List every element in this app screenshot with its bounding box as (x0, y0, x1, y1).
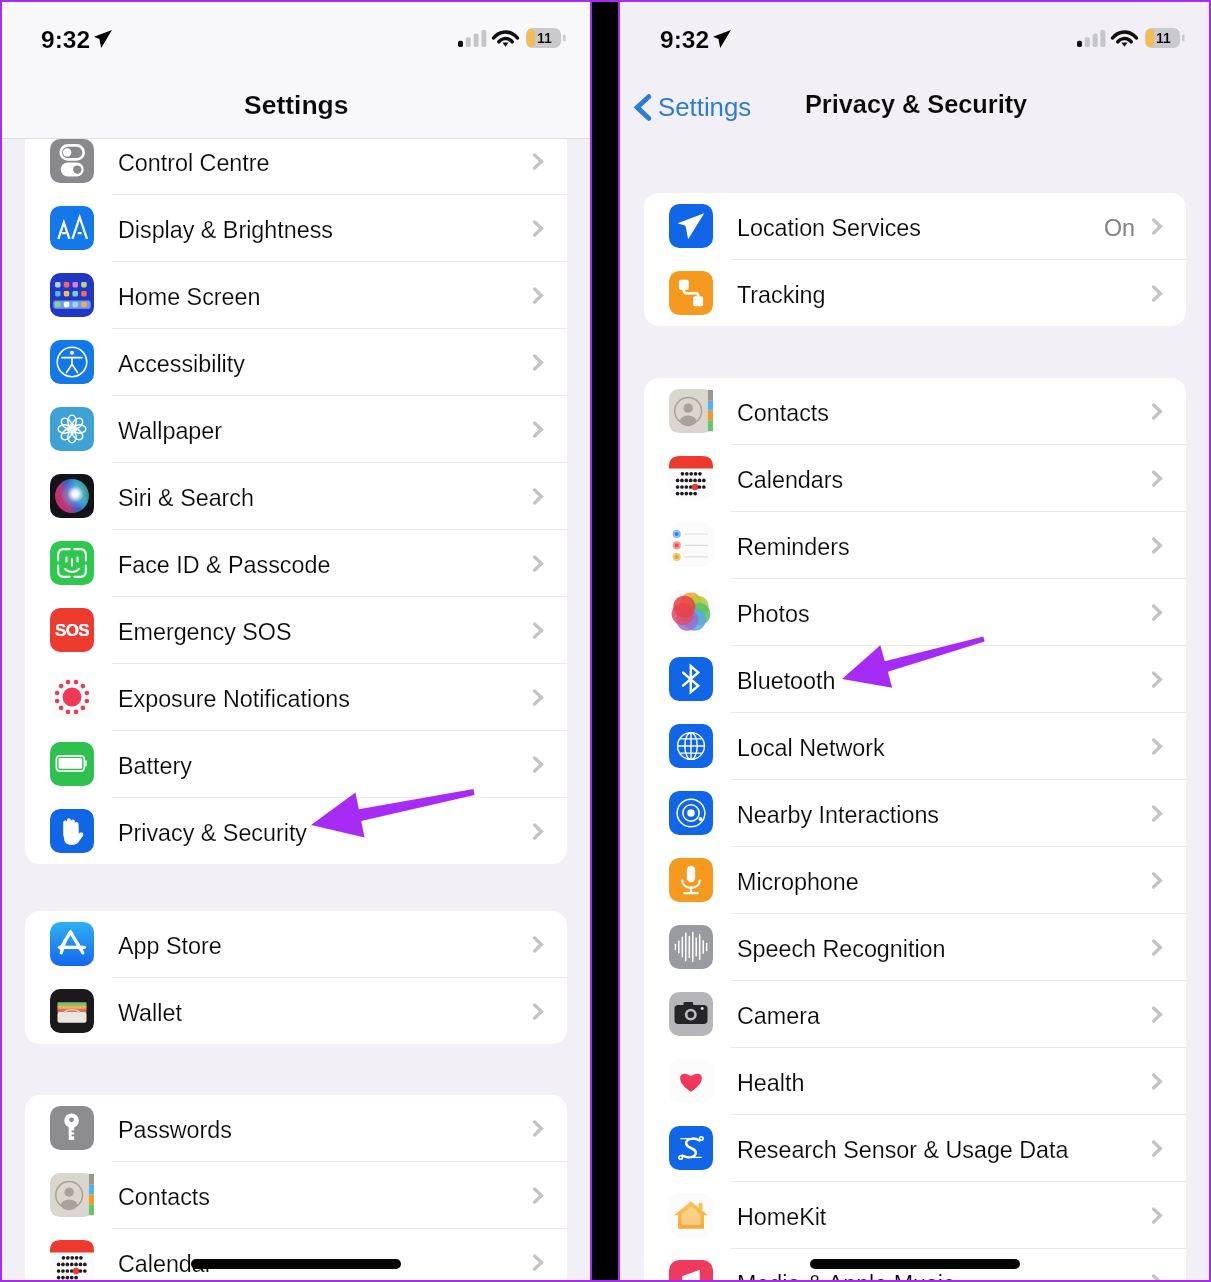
staticText: Calendar (118, 1251, 533, 1277)
button[interactable]: Face ID & Passcode (25, 530, 567, 597)
staticText: Contacts (737, 400, 1152, 426)
button[interactable]: Exposure Notifications (25, 664, 567, 731)
staticText: Emergency SOS (118, 619, 533, 645)
staticText: Photos (737, 601, 1152, 627)
button[interactable]: SOS (25, 597, 567, 664)
button[interactable]: Display & Brightness (25, 195, 567, 262)
button[interactable]: Location Services (644, 193, 1186, 260)
staticText: Settings (244, 90, 349, 120)
button[interactable]: Photos (644, 579, 1186, 646)
button[interactable]: Tracking (644, 260, 1186, 326)
staticText: Camera (737, 1003, 1152, 1029)
button[interactable]: Media & Apple Music (644, 1249, 1186, 1282)
button[interactable]: App Store (25, 911, 567, 978)
button[interactable]: Nearby Interactions (644, 780, 1186, 847)
staticText: On (1104, 215, 1136, 241)
button[interactable]: Speech Recognition (644, 914, 1186, 981)
staticText: Local Network (737, 735, 1152, 761)
staticText: 11 (1156, 30, 1171, 46)
button[interactable]: Contacts (644, 378, 1186, 445)
button[interactable]: Battery (25, 731, 567, 798)
button[interactable]: Wallpaper (25, 396, 567, 463)
button[interactable]: Camera (644, 981, 1186, 1048)
staticText: Accessibility (118, 351, 533, 377)
staticText: Wallpaper (118, 418, 533, 444)
staticText: Speech Recognition (737, 936, 1152, 962)
staticText: Control Centre (118, 150, 533, 176)
staticText: Microphone (737, 869, 1152, 895)
button[interactable]: Contacts (25, 1162, 567, 1229)
staticText: Bluetooth (737, 668, 1152, 694)
staticText: Privacy & Security (805, 90, 1028, 118)
button[interactable]: Health (644, 1048, 1186, 1115)
staticText: Location Services (737, 215, 1104, 241)
staticText: Home Screen (118, 284, 533, 310)
staticText: 11 (537, 30, 552, 46)
button[interactable]: Home Screen (25, 262, 567, 329)
staticText: Contacts (118, 1184, 533, 1210)
staticText: Privacy & Security (118, 820, 533, 846)
button[interactable]: Microphone (644, 847, 1186, 914)
staticText: HomeKit (737, 1204, 1152, 1230)
button[interactable]: Research Sensor & Usage Data (644, 1115, 1186, 1182)
staticText: Wallet (118, 1000, 533, 1026)
staticText: App Store (118, 933, 533, 959)
button[interactable]: Bluetooth (644, 646, 1186, 713)
staticText: Siri & Search (118, 485, 533, 511)
staticText: Passwords (118, 1117, 533, 1143)
staticText: SOS (55, 621, 90, 640)
button[interactable]: Reminders (644, 512, 1186, 579)
staticText: Reminders (737, 534, 1152, 560)
staticText: Tracking (737, 282, 1152, 308)
staticText: Calendars (737, 467, 1152, 493)
staticText: Health (737, 1070, 1152, 1096)
button[interactable]: Wallet (25, 978, 567, 1044)
staticText: Display & Brightness (118, 217, 533, 243)
staticText: 9:32 (41, 26, 91, 53)
staticText: Research Sensor & Usage Data (737, 1137, 1152, 1163)
button[interactable]: Accessibility (25, 329, 567, 396)
staticText: 9:32 (660, 26, 710, 53)
button[interactable]: Calendars (644, 445, 1186, 512)
button[interactable]: Control Centre (25, 128, 567, 195)
staticText: Nearby Interactions (737, 802, 1152, 828)
staticText: Battery (118, 753, 533, 779)
button[interactable]: Passwords (25, 1095, 567, 1162)
button[interactable]: Calendar (25, 1229, 567, 1282)
staticText: Face ID & Passcode (118, 552, 533, 578)
staticText: Settings (658, 93, 752, 122)
button[interactable]: Privacy & Security (25, 798, 567, 864)
button[interactable]: HomeKit (644, 1182, 1186, 1249)
staticText: Media & Apple Music (737, 1271, 1152, 1282)
staticText: Exposure Notifications (118, 686, 533, 712)
button[interactable]: Back to Settings (627, 90, 762, 127)
button[interactable]: Local Network (644, 713, 1186, 780)
button[interactable]: Siri & Search (25, 463, 567, 530)
